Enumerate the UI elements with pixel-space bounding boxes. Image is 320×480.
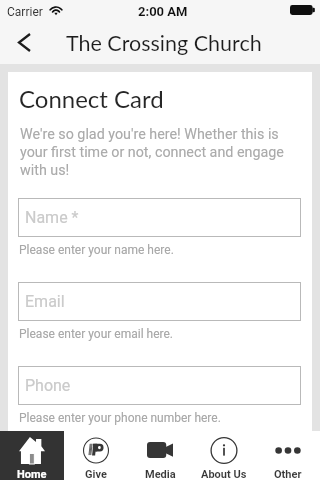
staticText: Name *: [25, 208, 79, 227]
button[interactable]: Phone: [18, 366, 301, 405]
staticText: Carrier: [7, 5, 43, 19]
staticText: Give: [85, 468, 107, 480]
staticText: Media: [145, 468, 176, 480]
button[interactable]: Back: [0, 24, 44, 64]
staticText: About Us: [201, 468, 247, 480]
staticText: 2:00 AM: [138, 4, 188, 19]
button[interactable]: Home: [0, 431, 64, 480]
staticText: Other: [274, 468, 302, 480]
button[interactable]: About Us: [192, 431, 256, 480]
button[interactable]: Name *: [18, 198, 301, 237]
staticText: Phone: [25, 376, 71, 395]
staticText: The Crossing Church: [66, 30, 262, 56]
staticText: Please enter your phone number here.: [19, 411, 221, 425]
button[interactable]: Email: [18, 282, 301, 321]
button[interactable]: Media: [128, 431, 192, 480]
staticText: Please enter your email here.: [19, 327, 174, 341]
staticText: Please enter your name here.: [19, 243, 174, 257]
staticText: Home: [17, 468, 47, 480]
staticText: We're so glad you're here! Whether this …: [20, 126, 296, 179]
button[interactable]: Other: [256, 431, 320, 480]
staticText: Email: [25, 292, 65, 311]
staticText: Connect Card: [19, 84, 164, 113]
button[interactable]: Give: [64, 431, 128, 480]
